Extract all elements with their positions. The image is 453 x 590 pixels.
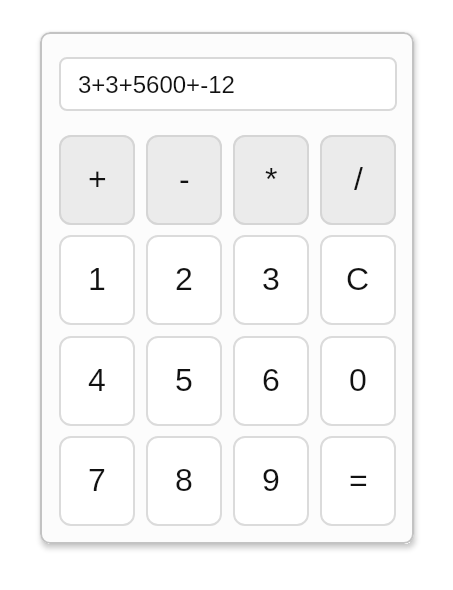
staticText: / bbox=[354, 161, 363, 197]
staticText: 7 bbox=[88, 462, 106, 498]
staticText: 3+3+5600+-12 bbox=[78, 71, 235, 98]
staticText: 1 bbox=[88, 261, 106, 297]
staticText: - bbox=[179, 161, 190, 197]
staticText: 5 bbox=[175, 362, 193, 398]
staticText: 4 bbox=[88, 362, 106, 398]
staticText: 6 bbox=[262, 362, 280, 398]
staticText: 3 bbox=[262, 261, 280, 297]
staticText: = bbox=[349, 462, 368, 498]
staticText: 0 bbox=[349, 362, 367, 398]
staticText: + bbox=[88, 161, 107, 197]
staticText: 8 bbox=[175, 462, 193, 498]
staticText: * bbox=[265, 161, 278, 197]
staticText: 2 bbox=[175, 261, 193, 297]
staticText: C bbox=[346, 261, 370, 297]
staticText: 9 bbox=[262, 462, 280, 498]
